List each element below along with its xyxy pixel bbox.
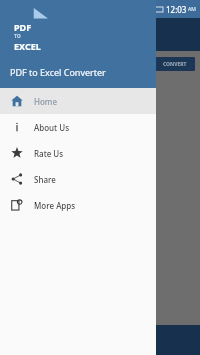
button[interactable]: CONVERT xyxy=(155,57,195,71)
staticText: More Apps xyxy=(34,200,76,211)
other: Share xyxy=(11,173,23,185)
button[interactable]: Share xyxy=(0,166,156,192)
staticText: PDF xyxy=(14,21,32,33)
button[interactable]: Home xyxy=(0,88,156,114)
other: Home xyxy=(11,95,23,107)
staticText: Home xyxy=(34,96,58,107)
other: About Us xyxy=(11,121,23,133)
staticText: EXCEL xyxy=(14,40,41,52)
staticText: AM xyxy=(188,6,196,13)
staticText: Share xyxy=(34,174,56,185)
staticText: TO xyxy=(14,33,21,40)
staticText: Rate Us xyxy=(34,148,64,159)
staticText: About Us xyxy=(34,122,70,133)
other: Rate Us xyxy=(11,147,23,159)
button[interactable]: Rate Us xyxy=(0,140,156,166)
staticText: CONVERT xyxy=(163,61,187,68)
button[interactable]: More Apps xyxy=(0,192,156,218)
other: More Apps xyxy=(11,199,23,211)
staticText: PDF to Excel Converter xyxy=(10,66,106,78)
button[interactable]: About Us xyxy=(0,114,156,140)
staticText: 12:03 xyxy=(166,4,187,15)
